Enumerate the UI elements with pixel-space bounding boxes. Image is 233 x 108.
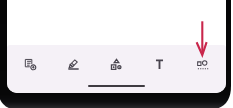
button[interactable]: Sticker: [181, 58, 224, 70]
button[interactable]: Add note: [9, 58, 52, 70]
button[interactable]: Shapes: [95, 58, 138, 70]
button[interactable]: Draw: [52, 58, 95, 70]
button[interactable]: Text: [138, 58, 181, 70]
